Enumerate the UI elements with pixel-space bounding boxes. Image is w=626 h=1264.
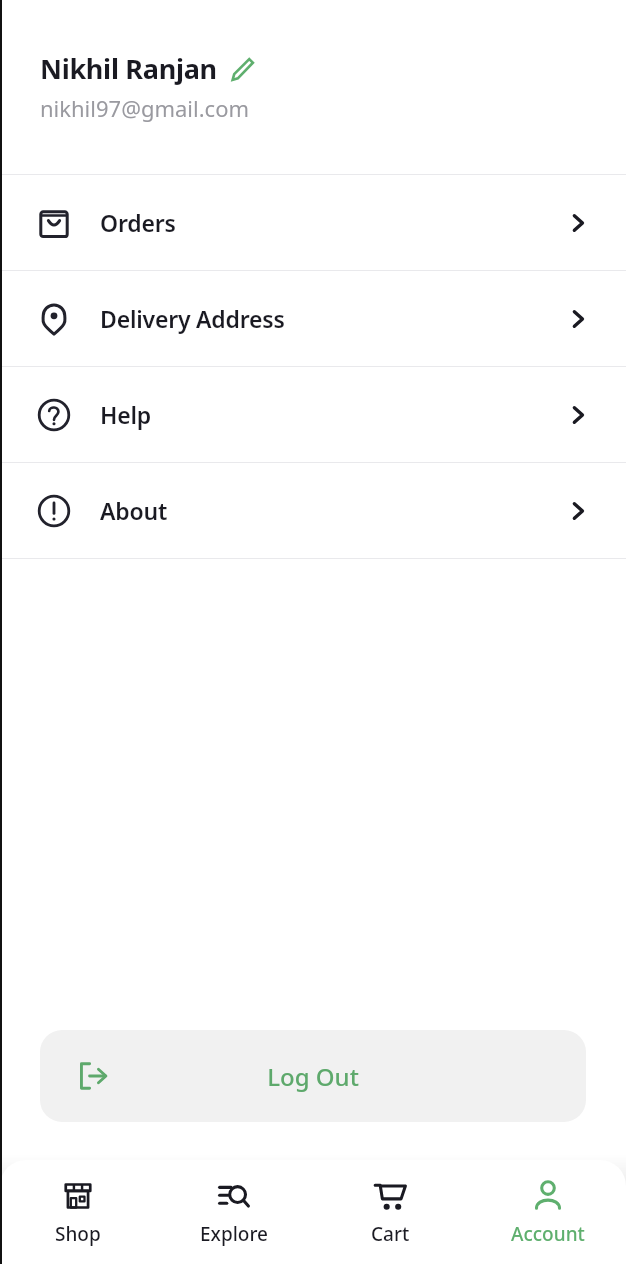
staticText: Shop [55, 1221, 101, 1247]
staticText: nikhil97@gmail.com [40, 93, 250, 123]
button[interactable]: Orders [0, 175, 626, 270]
button[interactable]: Delivery Address [0, 271, 626, 366]
staticText: Explore [200, 1221, 268, 1247]
staticText: Account [511, 1221, 585, 1247]
staticText: Nikhil Ranjan [40, 50, 217, 87]
staticText: Log Out [110, 1060, 516, 1093]
staticText: Help [100, 399, 151, 430]
staticText: Orders [100, 207, 176, 238]
button[interactable]: Cart [312, 1170, 469, 1255]
button[interactable]: Log Out [40, 1030, 586, 1122]
button[interactable]: Account [469, 1170, 626, 1255]
button[interactable]: Explore [156, 1170, 312, 1255]
button[interactable]: Help [0, 367, 626, 462]
button[interactable]: Shop [0, 1170, 156, 1255]
staticText: Cart [371, 1221, 410, 1247]
button[interactable]: Edit name [229, 56, 255, 82]
button[interactable]: About [0, 463, 626, 558]
staticText: About [100, 495, 168, 526]
staticText: Delivery Address [100, 303, 285, 334]
